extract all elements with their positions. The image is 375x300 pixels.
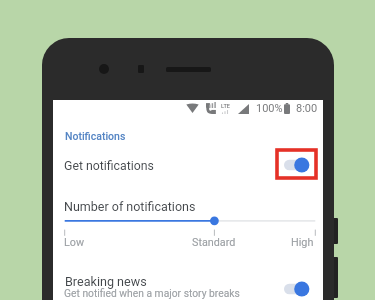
staticText: Notifications xyxy=(65,130,126,142)
staticText: LTE xyxy=(221,103,231,110)
staticText: Breaking news xyxy=(65,274,147,289)
button[interactable]: Breaking news xyxy=(53,270,323,300)
staticText: Get notified when a major story breaks xyxy=(64,287,240,299)
staticText: Number of notifications xyxy=(64,199,196,214)
staticText: Low xyxy=(64,236,85,249)
staticText: 8:00 xyxy=(296,102,318,115)
button[interactable]: Notifications xyxy=(65,130,126,142)
button[interactable]: Breaking news switch xyxy=(281,278,311,300)
staticText: Standard xyxy=(192,236,236,249)
staticText: High xyxy=(291,236,314,249)
button[interactable]: Get notifications switch xyxy=(281,154,311,176)
staticText: Get notifications xyxy=(64,159,154,173)
button[interactable]: Get notifications xyxy=(53,152,323,182)
staticText: 100% xyxy=(256,102,283,115)
